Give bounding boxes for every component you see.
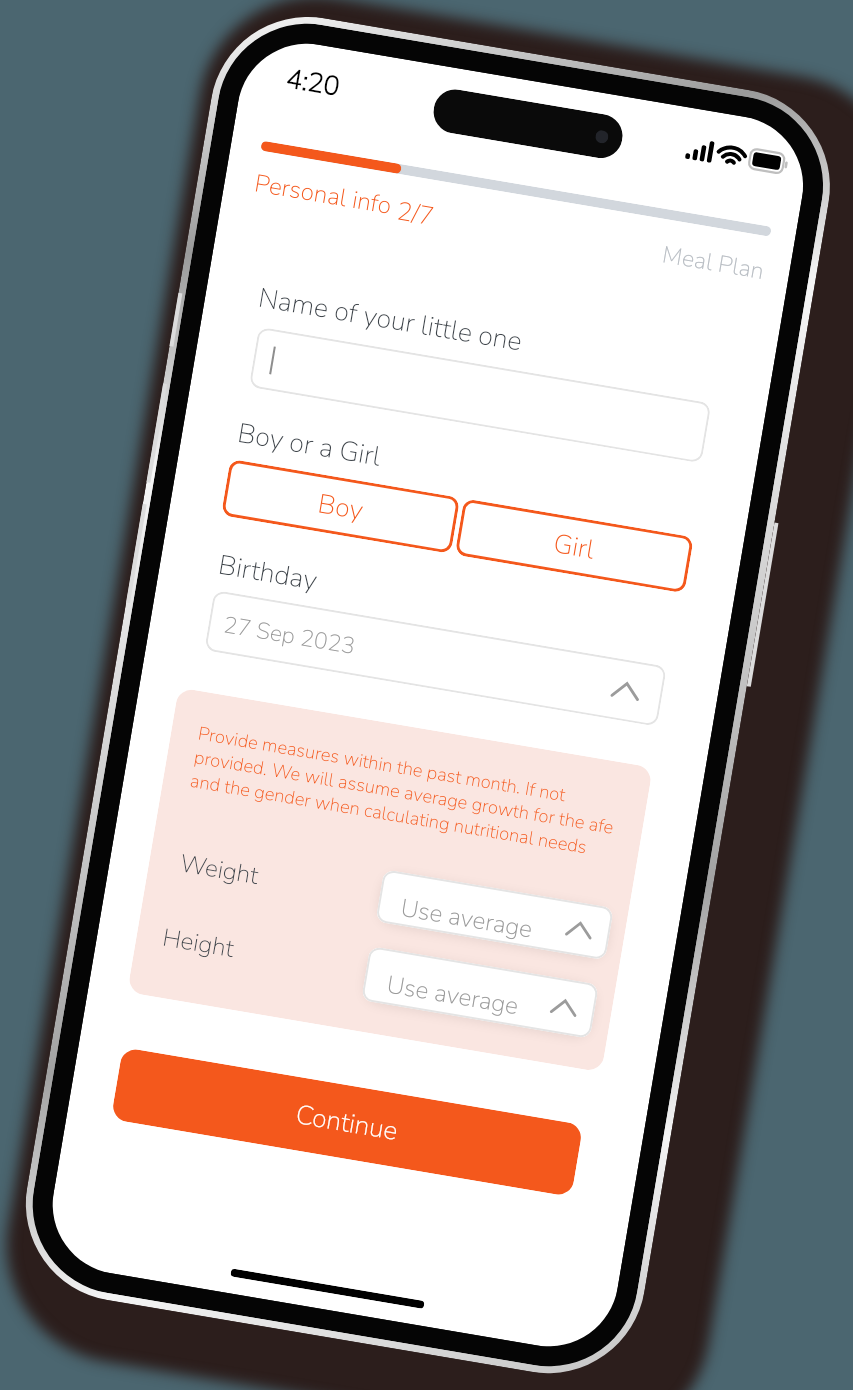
staticText: Provide measures within the past month. … <box>188 720 619 863</box>
staticText: Height <box>160 920 237 965</box>
button[interactable] <box>249 327 711 463</box>
button[interactable]: Continue <box>111 1047 583 1197</box>
staticText: Personal info <box>252 166 395 222</box>
button[interactable]: Use average <box>361 946 599 1039</box>
staticText: Meal Plan <box>660 238 767 287</box>
button[interactable]: Boy <box>221 459 460 554</box>
staticText: Weight <box>178 846 261 892</box>
button[interactable]: Girl <box>455 498 694 593</box>
staticText: Boy or a Girl <box>235 415 384 476</box>
staticText: Birthday <box>216 547 320 600</box>
staticText: Use average <box>384 968 521 1022</box>
staticText: 4:20 <box>284 60 343 105</box>
staticText: Boy <box>315 485 367 529</box>
staticText: Use average <box>398 891 535 945</box>
staticText: Girl <box>551 525 597 567</box>
button[interactable]: 27 Sep 2023 <box>204 590 667 727</box>
staticText: Continue <box>293 1096 401 1149</box>
other: Open picker <box>550 997 579 1017</box>
staticText: 27 Sep 2023 <box>221 609 358 662</box>
staticText: 2/7 <box>394 193 438 234</box>
button[interactable]: Use average <box>375 869 614 960</box>
other: Open date picker <box>610 680 642 701</box>
other: Open picker <box>565 919 594 940</box>
staticText: Name of your little one <box>256 280 525 361</box>
